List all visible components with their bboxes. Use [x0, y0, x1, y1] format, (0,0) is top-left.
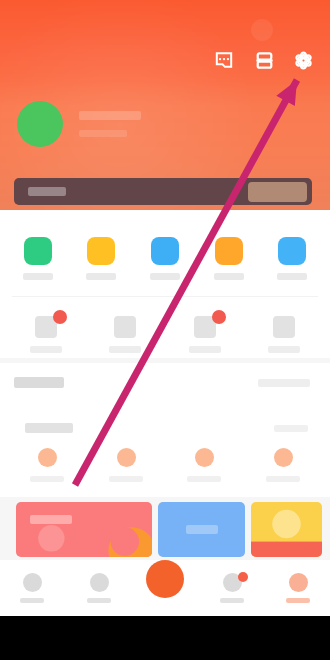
- button[interactable]: [12, 237, 64, 280]
- button[interactable]: [251, 502, 322, 557]
- button[interactable]: [171, 310, 239, 353]
- button[interactable]: Cart: [203, 560, 261, 616]
- button[interactable]: [250, 310, 318, 353]
- button[interactable]: [12, 310, 80, 353]
- button[interactable]: [158, 502, 245, 557]
- button[interactable]: [139, 237, 191, 280]
- button[interactable]: [203, 237, 255, 280]
- button[interactable]: Messages: [211, 47, 237, 73]
- button[interactable]: [16, 502, 152, 557]
- button[interactable]: [75, 237, 127, 280]
- button[interactable]: [251, 448, 315, 482]
- button[interactable]: [15, 448, 79, 482]
- button[interactable]: Settings: [290, 47, 316, 73]
- button[interactable]: Mine: [269, 560, 327, 616]
- button[interactable]: Categories: [70, 560, 128, 616]
- button[interactable]: [266, 237, 318, 280]
- button[interactable]: Home: [3, 560, 61, 616]
- button[interactable]: [94, 448, 158, 482]
- button[interactable]: [91, 310, 159, 353]
- button[interactable]: [17, 101, 63, 147]
- button[interactable]: [172, 448, 236, 482]
- button[interactable]: Scan: [136, 560, 194, 616]
- button[interactable]: Split screen: [251, 47, 277, 73]
- button[interactable]: [14, 178, 312, 205]
